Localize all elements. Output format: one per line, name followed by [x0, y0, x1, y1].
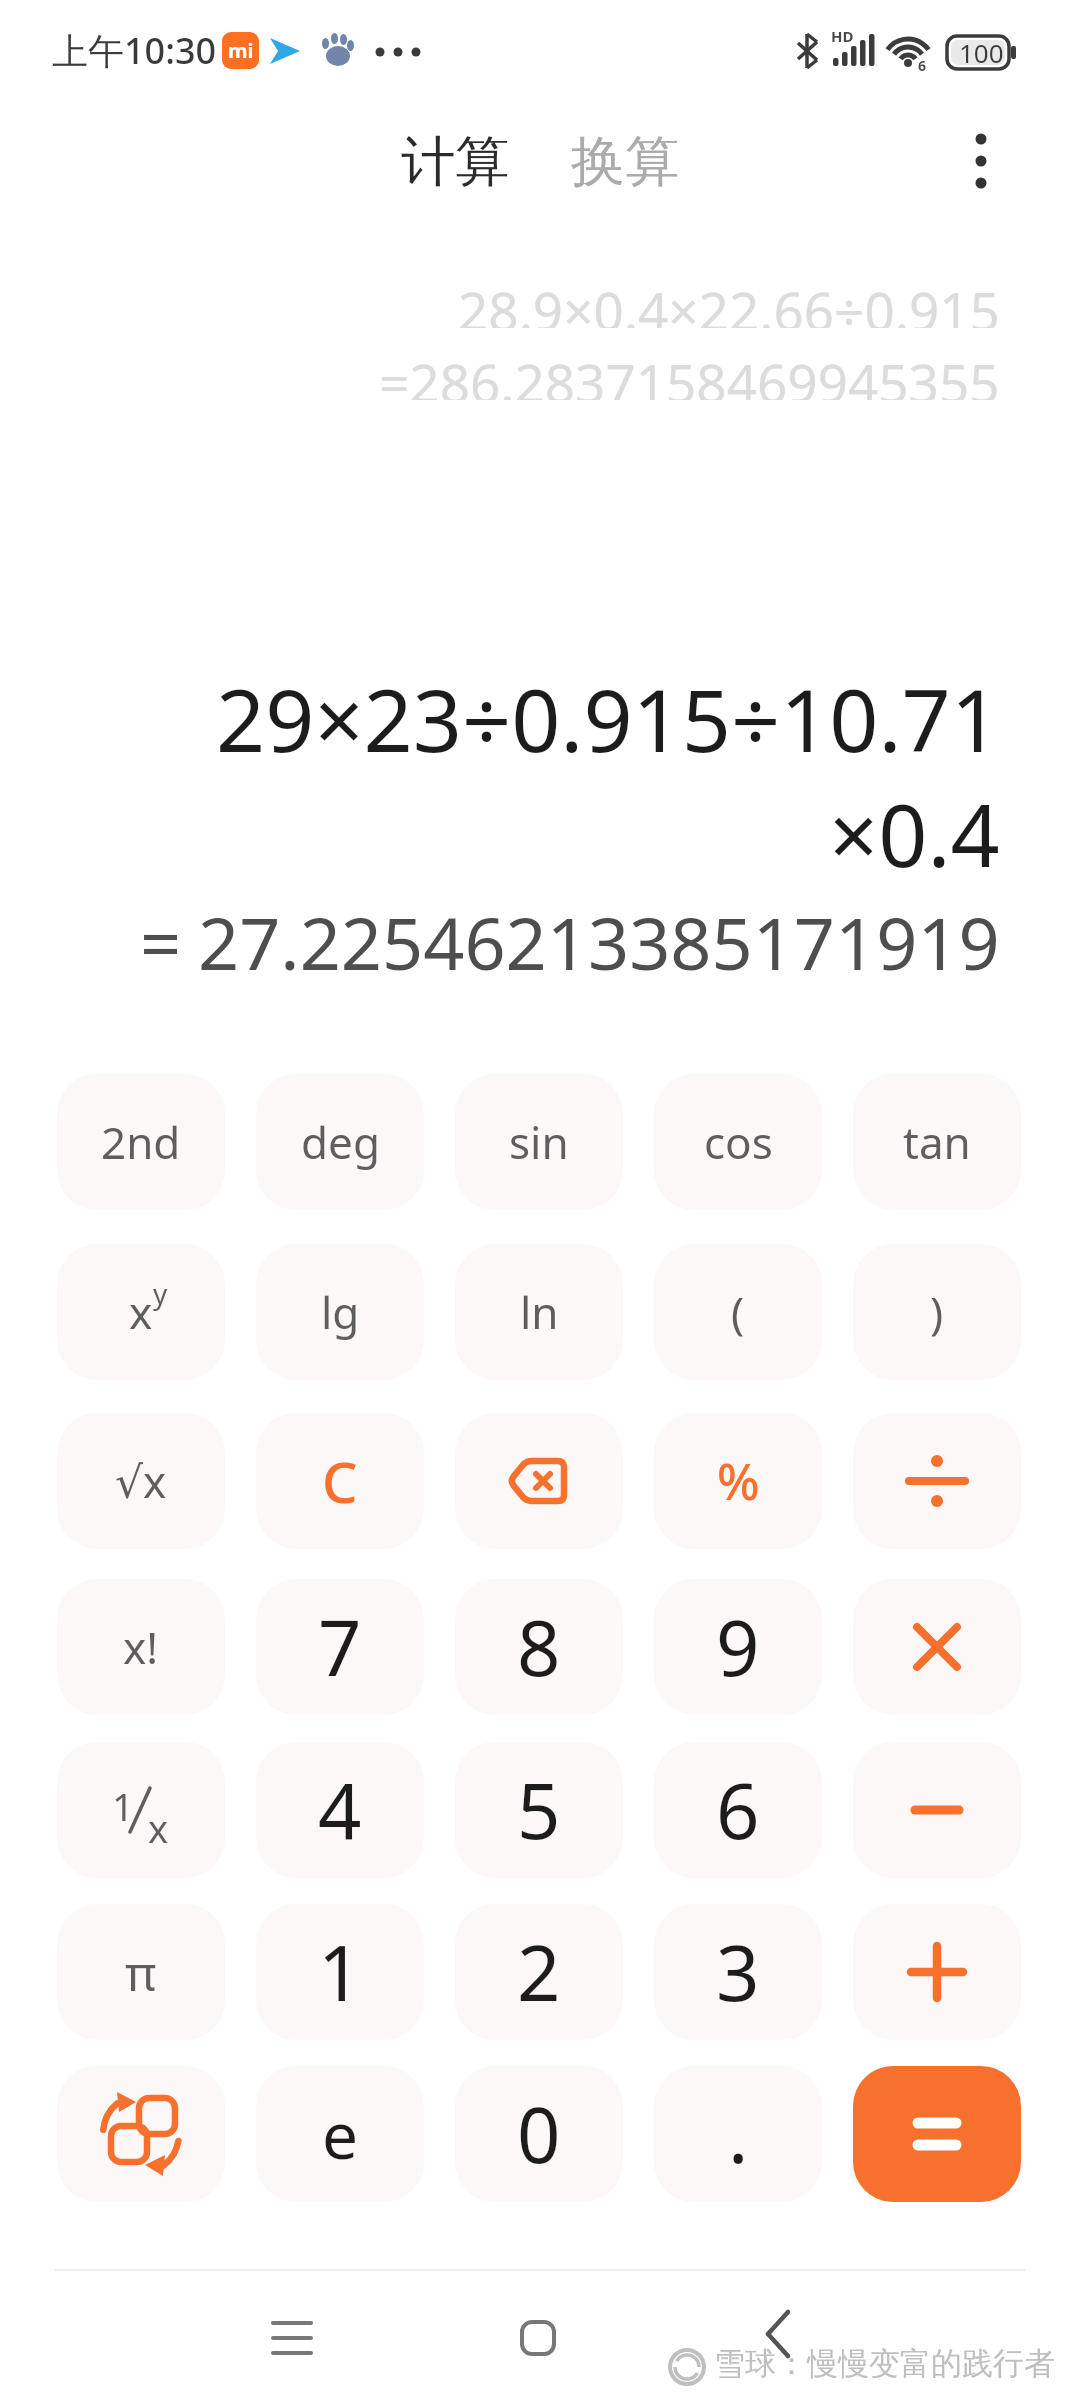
button[interactable]: 2nd: [57, 1074, 225, 1210]
button[interactable]: [455, 1413, 623, 1549]
button[interactable]: sin: [455, 1074, 623, 1210]
staticText: 2: [517, 1920, 561, 2024]
button[interactable]: deg: [256, 1074, 424, 1210]
button[interactable]: (: [654, 1244, 822, 1380]
staticText: (: [731, 1282, 745, 1342]
staticText: sin: [509, 1112, 569, 1172]
staticText: e: [322, 2091, 359, 2178]
button[interactable]: π: [57, 1904, 225, 2040]
button[interactable]: tan: [853, 1074, 1021, 1210]
staticText: 7: [318, 1595, 362, 1699]
button[interactable]: %: [654, 1413, 822, 1549]
staticText: 6: [918, 56, 927, 74]
staticText: =: [140, 893, 182, 991]
staticText: C: [322, 1443, 358, 1519]
button[interactable]: [262, 2310, 322, 2366]
staticText: x!: [123, 1617, 159, 1677]
button[interactable]: 8: [455, 1579, 623, 1715]
button[interactable]: 计算: [390, 128, 520, 192]
button[interactable]: ln: [455, 1244, 623, 1380]
staticText: x: [148, 1802, 169, 1854]
button[interactable]: [750, 2306, 806, 2362]
button[interactable]: [57, 2066, 225, 2202]
button[interactable]: [508, 2310, 568, 2366]
button[interactable]: 换算: [560, 128, 690, 192]
button[interactable]: cos: [654, 1074, 822, 1210]
staticText: 8: [517, 1595, 561, 1699]
staticText: 28.9×0.4×22.66÷0.915: [458, 274, 1000, 328]
staticText: cos: [704, 1112, 773, 1172]
staticText: 1: [318, 1920, 362, 2024]
button[interactable]: 5: [455, 1742, 623, 1878]
button[interactable]: 0: [455, 2066, 623, 2202]
staticText: 3: [716, 1920, 760, 2024]
staticText: =286.2837158469945355: [379, 346, 1000, 400]
staticText: 5: [517, 1758, 561, 1862]
button[interactable]: C: [256, 1413, 424, 1549]
staticText: 计算: [401, 128, 509, 192]
staticText: π: [125, 1940, 157, 2005]
staticText: y: [153, 1274, 168, 1312]
button[interactable]: 7: [256, 1579, 424, 1715]
staticText: 100: [959, 35, 1004, 70]
staticText: 1: [112, 1780, 134, 1832]
staticText: tan: [903, 1112, 971, 1172]
button[interactable]: x!: [57, 1579, 225, 1715]
button[interactable]: √x: [57, 1413, 225, 1549]
staticText: 4: [318, 1758, 362, 1862]
button[interactable]: [853, 1904, 1021, 2040]
button[interactable]: 1: [57, 1742, 225, 1878]
staticText: HD: [831, 26, 854, 44]
button[interactable]: ): [853, 1244, 1021, 1380]
staticText: 29×23÷0.915÷10.71: [216, 660, 1000, 770]
button[interactable]: x: [57, 1244, 225, 1380]
button[interactable]: .: [654, 2066, 822, 2202]
staticText: mi: [228, 37, 254, 64]
staticText: lg: [321, 1282, 360, 1342]
button[interactable]: 9: [654, 1579, 822, 1715]
staticText: %: [717, 1447, 760, 1515]
staticText: deg: [301, 1112, 380, 1172]
staticText: ): [930, 1282, 944, 1342]
button[interactable]: [955, 130, 1007, 192]
button[interactable]: 2: [455, 1904, 623, 2040]
staticText: ln: [520, 1282, 559, 1342]
button[interactable]: [853, 1579, 1021, 1715]
staticText: 上午10:30: [52, 26, 217, 75]
staticText: √x: [115, 1451, 167, 1511]
staticText: 雪球：慢慢变富的践行者: [714, 2344, 1055, 2383]
button[interactable]: 3: [654, 1904, 822, 2040]
button[interactable]: [853, 2066, 1021, 2202]
staticText: x: [129, 1282, 153, 1342]
staticText: ×0.4: [829, 775, 1000, 885]
staticText: .: [728, 2082, 749, 2186]
staticText: 9: [716, 1595, 760, 1699]
button[interactable]: 1: [256, 1904, 424, 2040]
staticText: 2nd: [101, 1112, 181, 1172]
staticText: 0: [517, 2082, 561, 2186]
button[interactable]: lg: [256, 1244, 424, 1380]
staticText: 6: [716, 1758, 760, 1862]
button[interactable]: e: [256, 2066, 424, 2202]
button[interactable]: [853, 1413, 1021, 1549]
button[interactable]: 6: [654, 1742, 822, 1878]
button[interactable]: 4: [256, 1742, 424, 1878]
staticText: 换算: [571, 128, 679, 192]
button[interactable]: [853, 1742, 1021, 1878]
staticText: 27.22546213385171919: [198, 893, 1000, 991]
